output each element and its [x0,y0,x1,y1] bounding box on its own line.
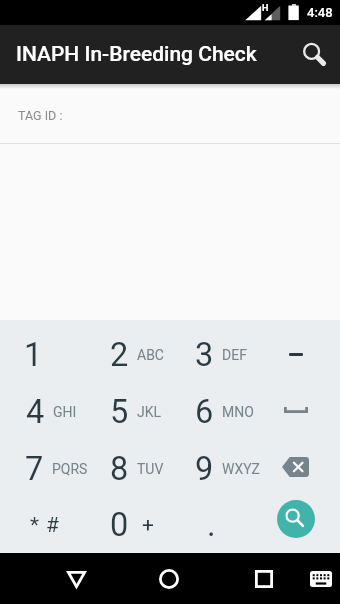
staticText: 5 [110,393,129,431]
button[interactable]: Dash [255,326,340,383]
button[interactable]: Backspace [255,440,340,497]
staticText: + [142,513,154,538]
staticText: MNO [222,404,254,420]
staticText: 3 [195,336,214,374]
staticText: 6 [195,393,214,431]
staticText: 0 [110,506,129,544]
button[interactable]: Home [149,559,189,599]
button[interactable]: Back [56,559,96,599]
button[interactable]: Space [255,383,340,440]
staticText: INAPH In-Breeding Check [16,42,257,67]
staticText: DEF [222,347,247,363]
staticText: 4:48 [307,5,333,20]
button[interactable]: 2 ABC [85,326,170,383]
button[interactable]: Switch keyboard [305,563,337,595]
staticText: . [207,506,216,544]
button[interactable]: 8 TUV [85,440,170,497]
staticText: JKL [137,404,162,420]
staticText: 9 [195,450,214,488]
staticText: 2 [110,336,129,374]
staticText: TUV [137,461,164,477]
button[interactable]: . [170,497,255,553]
staticText: # [46,513,59,538]
staticText: TAG ID : [18,108,63,123]
button[interactable]: Search [255,497,340,553]
button[interactable]: 7 PQRS [0,440,85,497]
button[interactable]: 9 WXYZ [170,440,255,497]
button[interactable]: 0 + [85,497,170,553]
button[interactable]: * # [0,497,85,553]
staticText: 1 [24,336,43,374]
staticText: * [30,513,40,538]
staticText: 4 [26,393,45,431]
button[interactable]: 1 [0,326,85,383]
button[interactable]: 6 MNO [170,383,255,440]
staticText: 8 [110,450,129,488]
button[interactable]: 5 JKL [85,383,170,440]
button[interactable]: 4 GHI [0,383,85,440]
staticText: 7 [25,450,44,488]
staticText: H [262,3,269,14]
staticText: ABC [137,347,164,363]
button[interactable]: 3 DEF [170,326,255,383]
button[interactable]: Search [291,33,335,77]
button[interactable]: Recent apps [244,559,284,599]
staticText: PQRS [52,461,88,477]
staticText: WXYZ [222,461,260,477]
staticText: GHI [53,404,77,420]
